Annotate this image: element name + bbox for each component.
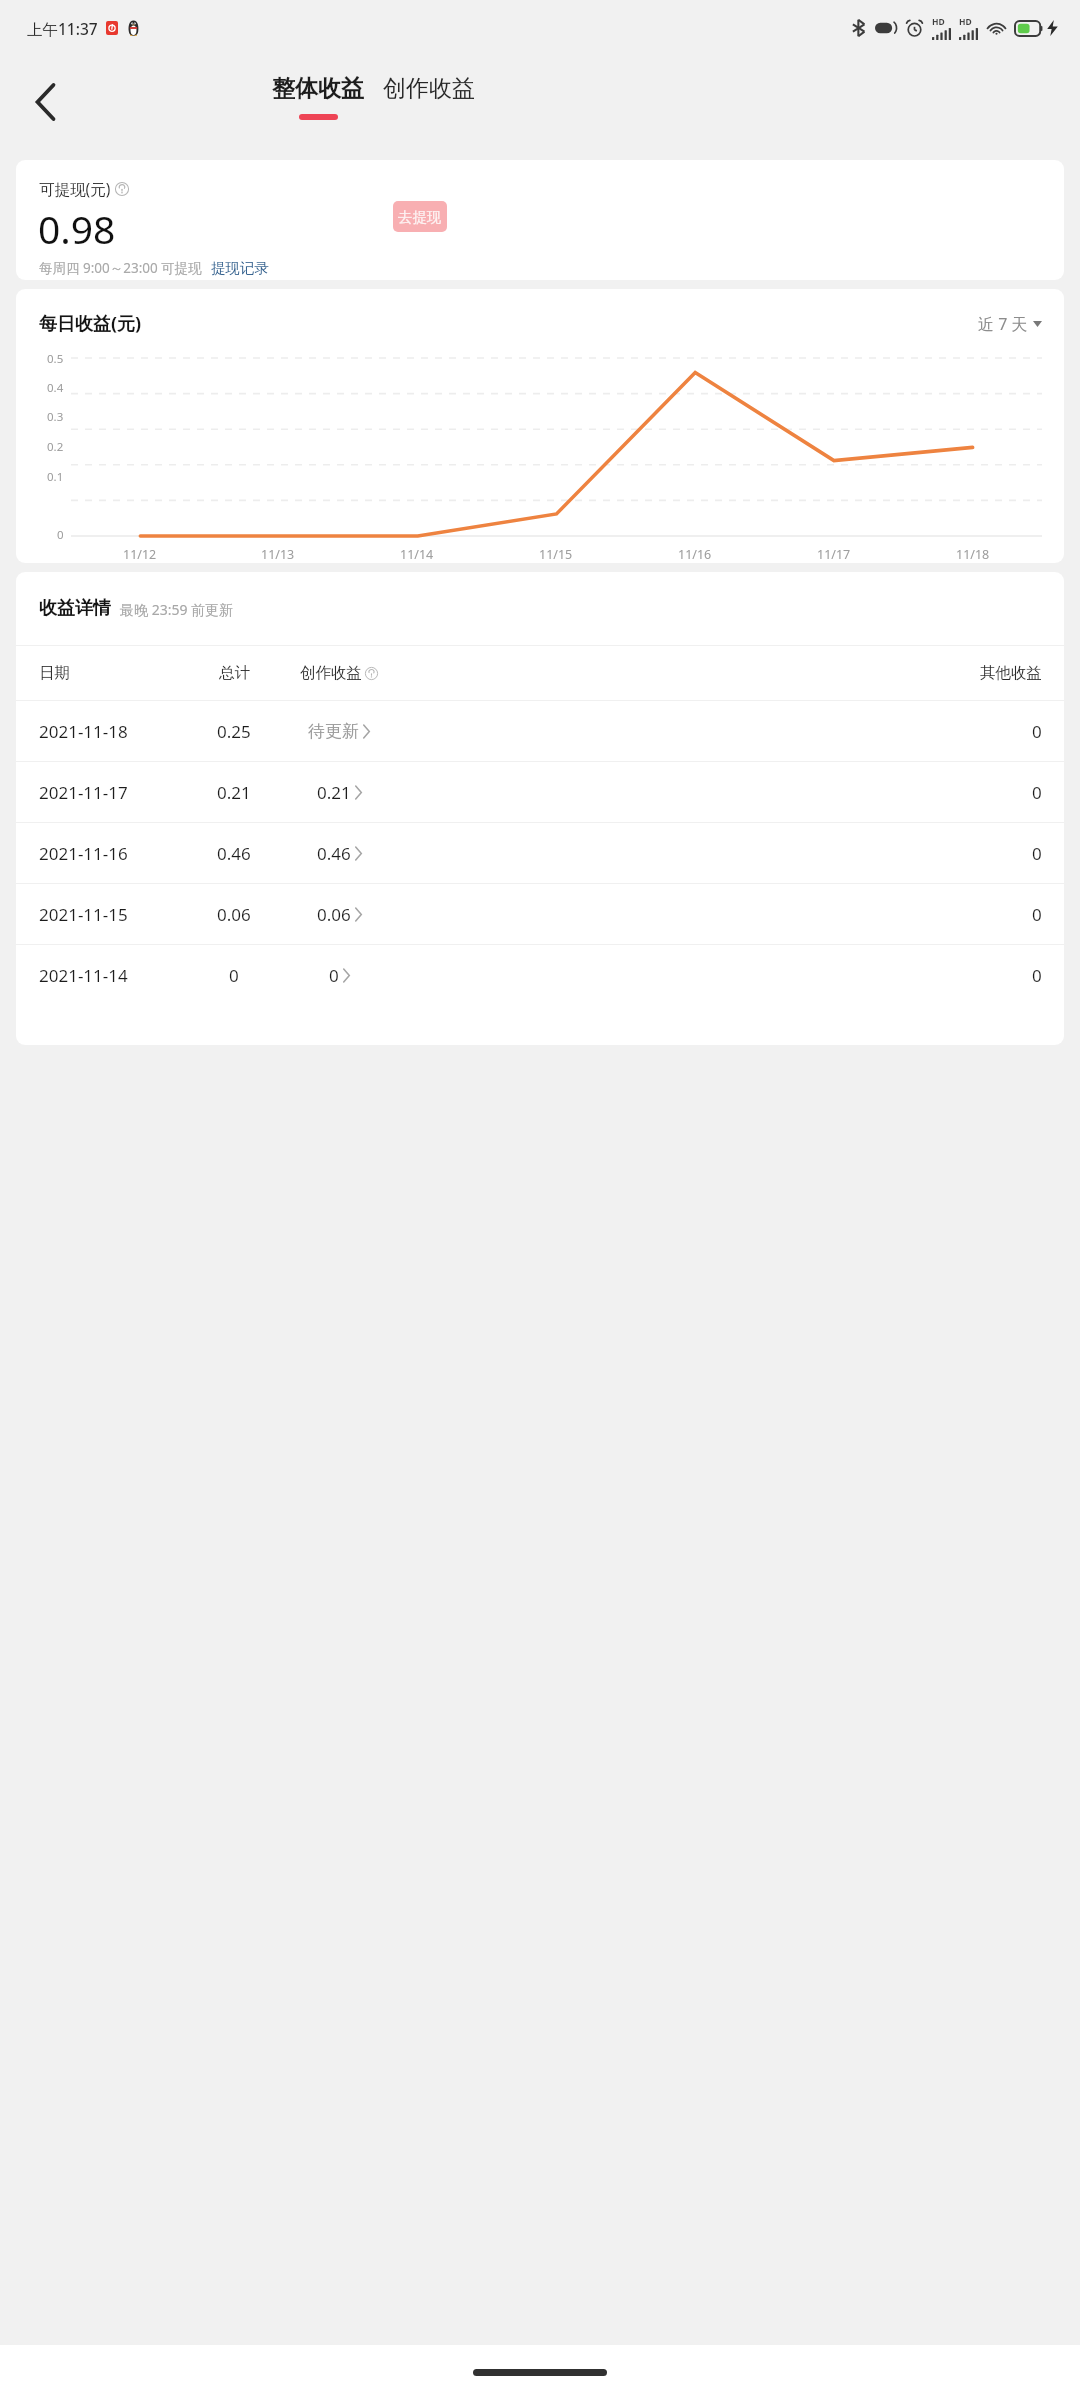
staticText: 11/16: [678, 546, 712, 563]
staticText: 2021-11-15: [39, 903, 128, 926]
staticText: 0.21: [217, 781, 251, 804]
staticText: 0: [1032, 903, 1042, 926]
staticText: 11/15: [539, 546, 573, 563]
button[interactable]: 2021-11-17: [16, 762, 1064, 822]
staticText: 总计: [219, 663, 250, 683]
staticText: 0.06: [317, 903, 351, 926]
staticText: 11/18: [956, 546, 990, 563]
staticText: 整体收益: [272, 74, 364, 103]
button[interactable]: 创作收益: [383, 74, 475, 103]
staticText: 0: [57, 527, 64, 543]
staticText: 0.98: [38, 202, 116, 255]
staticText: 去提现: [398, 208, 442, 226]
staticText: 0.06: [217, 903, 251, 926]
staticText: 0.46: [217, 842, 251, 865]
button[interactable]: Help: [115, 182, 129, 196]
staticText: 2021-11-14: [39, 964, 128, 987]
staticText: 待更新: [308, 721, 359, 742]
staticText: 上午11:37: [27, 18, 98, 39]
staticText: 近 7 天: [978, 313, 1028, 335]
staticText: 2021-11-18: [39, 720, 128, 743]
staticText: 每周四 9:00～23:00 可提现: [39, 259, 202, 277]
staticText: 0.2: [47, 439, 64, 455]
staticText: 11/12: [123, 546, 157, 563]
button[interactable]: 去提现: [393, 201, 447, 232]
staticText: 0: [1032, 720, 1042, 743]
button[interactable]: 2021-11-14: [16, 945, 1064, 1005]
staticText: 最晚 23:59 前更新: [120, 600, 234, 619]
staticText: 0: [1032, 781, 1042, 804]
staticText: HD: [959, 16, 972, 28]
staticText: 0.3: [47, 409, 64, 425]
button[interactable]: 提现记录: [211, 259, 269, 277]
button[interactable]: 整体收益: [272, 74, 364, 120]
button[interactable]: 2021-11-15: [16, 884, 1064, 944]
staticText: 其他收益: [980, 663, 1042, 683]
button[interactable]: 近 7 天: [978, 313, 1042, 335]
staticText: 0: [329, 964, 339, 987]
staticText: 收益详情: [39, 597, 111, 620]
staticText: 0.25: [217, 720, 251, 743]
staticText: 11/17: [817, 546, 851, 563]
staticText: 11/13: [261, 546, 295, 563]
staticText: 0.4: [47, 380, 64, 396]
staticText: 2021-11-16: [39, 842, 128, 865]
staticText: 提现记录: [211, 259, 269, 277]
staticText: 2021-11-17: [39, 781, 128, 804]
staticText: 0.5: [47, 351, 64, 367]
staticText: 创作收益: [383, 74, 475, 103]
button[interactable]: 2021-11-18: [16, 701, 1064, 761]
staticText: 每日收益(元): [39, 311, 142, 336]
staticText: 0.46: [317, 842, 351, 865]
staticText: 创作收益: [300, 663, 362, 683]
button[interactable]: 2021-11-16: [16, 823, 1064, 883]
staticText: 0.21: [317, 781, 351, 804]
staticText: 0: [229, 964, 239, 987]
button[interactable]: Back: [14, 71, 76, 133]
staticText: 0: [1032, 842, 1042, 865]
staticText: 0.1: [47, 469, 64, 485]
staticText: 11/14: [400, 546, 434, 563]
staticText: HD: [932, 16, 945, 28]
staticText: 日期: [39, 663, 70, 683]
staticText: 可提现(元): [39, 178, 111, 199]
staticText: 0: [1032, 964, 1042, 987]
